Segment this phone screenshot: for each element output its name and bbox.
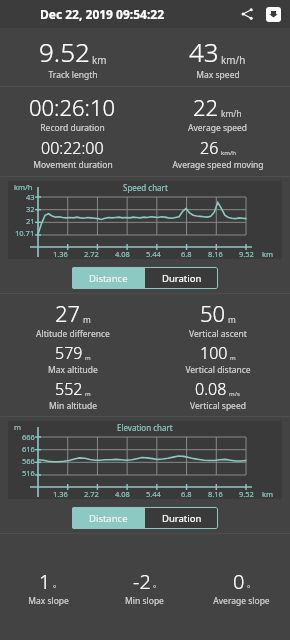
staticText: m	[83, 314, 91, 325]
staticText: Min altitude	[49, 400, 97, 412]
staticText: 8.16	[208, 489, 223, 499]
staticText: 00:26:10	[29, 92, 116, 122]
staticText: 6.8	[181, 489, 192, 499]
staticText: Distance	[89, 512, 128, 525]
staticText: Average slope	[213, 595, 270, 607]
staticText: 2.72	[84, 489, 99, 499]
staticText: 2.72	[84, 249, 99, 259]
staticText: km/h	[14, 182, 33, 192]
staticText: m	[228, 314, 236, 325]
button[interactable]: Duration	[145, 267, 218, 289]
staticText: Movement duration	[33, 159, 113, 171]
staticText: m	[85, 390, 91, 398]
staticText: Average speed moving	[172, 159, 264, 171]
staticText: m	[14, 422, 22, 432]
button[interactable]: Share	[236, 3, 258, 25]
staticText: Elevation chart	[117, 422, 173, 433]
staticText: 22	[193, 92, 219, 122]
staticText: 26	[200, 137, 219, 159]
staticText: Min slope	[125, 595, 164, 607]
staticText: °	[53, 583, 57, 593]
staticText: Speed chart	[123, 182, 168, 193]
staticText: 1.36	[53, 249, 68, 259]
staticText: Max speed	[196, 69, 240, 81]
staticText: km/h	[221, 53, 246, 66]
staticText: Vertical speed	[190, 400, 246, 412]
staticText: Max altitude	[48, 364, 98, 376]
staticText: 1	[39, 568, 51, 595]
staticText: 4.08	[115, 249, 130, 259]
staticText: 6.8	[181, 249, 192, 259]
staticText: Track length	[48, 69, 98, 81]
staticText: 4.08	[115, 489, 130, 499]
staticText: 50	[200, 298, 226, 328]
staticText: 9.52	[239, 489, 254, 499]
staticText: m	[230, 354, 236, 362]
staticText: Max slope	[28, 595, 69, 607]
staticText: 516	[22, 468, 35, 478]
staticText: km	[262, 249, 274, 259]
staticText: Duration	[162, 512, 202, 525]
staticText: 9.52	[239, 249, 254, 259]
staticText: km/h	[221, 149, 236, 157]
staticText: 1.36	[53, 489, 68, 499]
staticText: Vertical distance	[185, 364, 251, 376]
staticText: 21	[26, 216, 35, 226]
staticText: 616	[22, 444, 35, 454]
staticText: Dec 22, 2019 09:54:22	[40, 6, 165, 22]
staticText: 566	[22, 456, 35, 466]
staticText: 552	[55, 378, 83, 400]
button[interactable]: Distance	[72, 267, 145, 289]
staticText: km/h	[221, 108, 242, 119]
staticText: m	[85, 354, 91, 362]
staticText: km	[92, 53, 107, 66]
staticText: 00:22:00	[41, 137, 104, 159]
staticText: 0.08	[195, 378, 227, 400]
staticText: 8.16	[208, 249, 223, 259]
staticText: °	[247, 583, 251, 593]
button[interactable]: Distance	[72, 507, 145, 529]
staticText: 27	[55, 298, 81, 328]
staticText: Distance	[89, 272, 128, 285]
staticText: -2	[133, 568, 151, 595]
staticText: Duration	[162, 272, 202, 285]
staticText: Average speed	[188, 122, 247, 134]
staticText: 579	[55, 342, 83, 364]
staticText: Vertical ascent	[189, 328, 247, 340]
staticText: 0	[233, 568, 245, 595]
staticText: 32	[26, 204, 35, 214]
staticText: 10.71	[15, 228, 35, 238]
staticText: km	[262, 489, 274, 499]
staticText: Altitude difference	[36, 328, 110, 340]
staticText: 5.44	[146, 489, 161, 499]
staticText: m/s	[229, 390, 240, 398]
staticText: 666	[22, 432, 35, 442]
staticText: 9.52	[39, 34, 90, 69]
staticText: 5.44	[146, 249, 161, 259]
button[interactable]: Download	[262, 3, 284, 25]
staticText: 43	[26, 192, 35, 202]
staticText: 43	[189, 34, 219, 69]
button[interactable]: Duration	[145, 507, 218, 529]
staticText: 100	[200, 342, 228, 364]
staticText: °	[153, 583, 157, 593]
staticText: Record duration	[40, 122, 105, 134]
